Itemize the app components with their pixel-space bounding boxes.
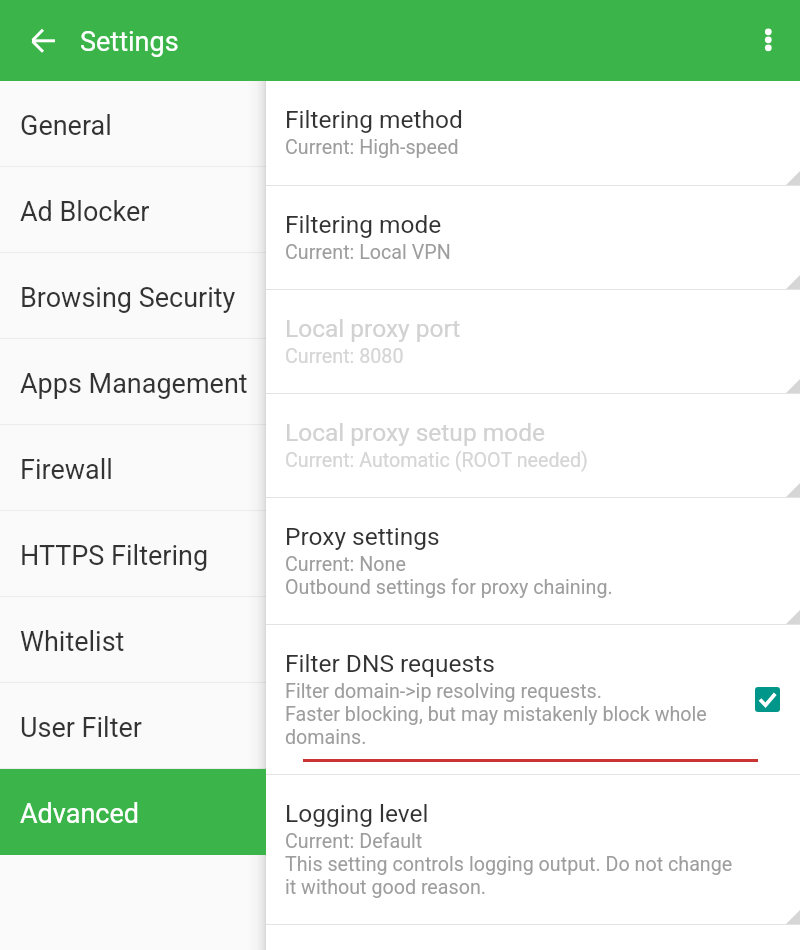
button[interactable]: Filtering mode [266, 186, 800, 290]
staticText: General [20, 110, 112, 142]
staticText: Settings [80, 26, 179, 58]
button[interactable]: HTTPS Filtering [0, 511, 266, 597]
staticText: Current: Default [285, 830, 423, 853]
staticText: Filter domain->ip resolving requests. [285, 680, 602, 703]
staticText: domains. [285, 726, 367, 749]
staticText: Filter DNS requests [285, 649, 495, 678]
staticText: Current: High-speed [285, 136, 459, 159]
staticText: Firewall [20, 454, 113, 486]
staticText: Current: Local VPN [285, 241, 451, 264]
staticText: Current: None [285, 553, 406, 576]
button[interactable]: More options [745, 19, 789, 63]
staticText: HTTPS Filtering [20, 540, 209, 572]
staticText: Ad Blocker [20, 196, 150, 228]
staticText: it without good reason. [285, 876, 486, 899]
staticText: Outbound settings for proxy chaining. [285, 576, 613, 599]
button[interactable]: Filtering method [266, 81, 800, 186]
staticText: Local proxy port [285, 314, 461, 343]
staticText: Whitelist [20, 626, 125, 658]
staticText: Browsing Security [20, 282, 236, 314]
button[interactable]: Apps Management [0, 339, 266, 425]
button[interactable]: Proxy settings [266, 498, 800, 625]
button[interactable]: Browsing Security [0, 253, 266, 339]
staticText: Apps Management [20, 368, 248, 400]
staticText: Advanced [20, 798, 139, 830]
staticText: Current: Automatic (ROOT needed) [285, 449, 588, 472]
button[interactable]: General [0, 81, 266, 167]
button[interactable]: Logging level [266, 775, 800, 925]
staticText: Faster blocking, but may mistakenly bloc… [285, 703, 707, 726]
button[interactable]: Ad Blocker [0, 167, 266, 253]
button[interactable]: Local proxy port [266, 290, 800, 394]
staticText: Logging level [285, 799, 429, 828]
button[interactable]: Filter DNS requests [266, 625, 800, 775]
button[interactable]: Firewall [0, 425, 266, 511]
staticText: User Filter [20, 712, 142, 744]
staticText: Local proxy setup mode [285, 418, 545, 447]
button[interactable]: User Filter [0, 683, 266, 769]
button[interactable]: Advanced [0, 769, 266, 855]
staticText: Filtering mode [285, 210, 442, 239]
staticText: Current: 8080 [285, 345, 404, 368]
button[interactable]: Whitelist [0, 597, 266, 683]
staticText: This setting controls logging output. Do… [285, 853, 733, 876]
button[interactable]: Filter DNS requests checkbox [755, 687, 780, 712]
button[interactable]: Navigate up [21, 19, 65, 63]
staticText: Proxy settings [285, 522, 440, 551]
button[interactable]: Local proxy setup mode [266, 394, 800, 498]
staticText: Filtering method [285, 105, 463, 134]
